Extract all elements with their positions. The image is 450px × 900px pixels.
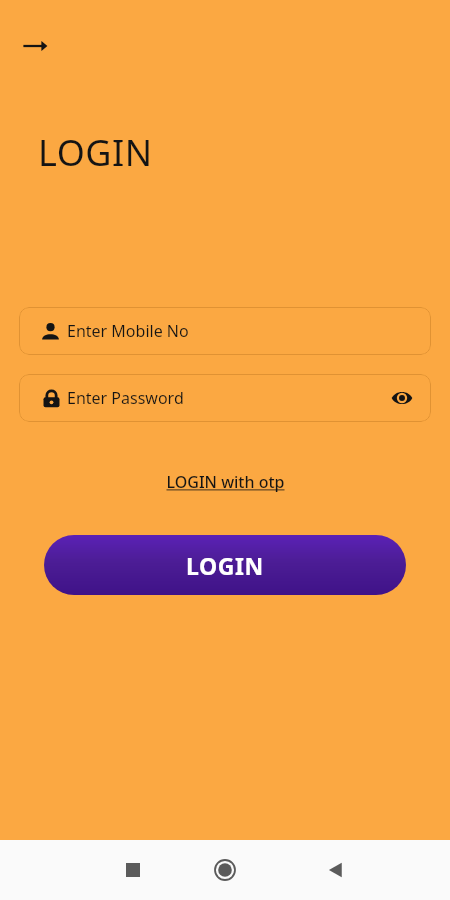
button[interactable]: Enter Password <box>19 374 431 422</box>
button[interactable]: Forward <box>16 26 56 66</box>
button[interactable]: Home <box>203 848 247 892</box>
button[interactable]: Enter Mobile No <box>19 307 431 355</box>
staticText: LOGIN <box>186 550 264 581</box>
button[interactable]: Back <box>315 850 355 890</box>
staticText: Enter Mobile No <box>67 320 189 342</box>
button[interactable]: LOGIN with otp <box>160 467 291 497</box>
button[interactable]: Recents <box>113 850 153 890</box>
staticText: Enter Password <box>67 387 184 409</box>
button[interactable]: LOGIN <box>44 535 406 595</box>
staticText: LOGIN with otp <box>166 471 285 493</box>
staticText: LOGIN <box>38 128 153 177</box>
button[interactable]: Show password <box>387 383 417 413</box>
